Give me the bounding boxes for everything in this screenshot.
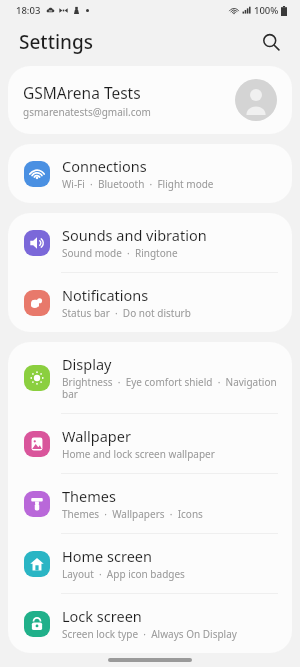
- staticText: Wallpaper: [62, 426, 131, 446]
- staticText: Home and lock screen wallpaper: [62, 447, 215, 461]
- staticText: Notifications: [62, 285, 149, 305]
- staticText: Status bar · Do not disturb: [62, 306, 191, 320]
- staticText: Brightness · Eye comfort shield · Naviga…: [62, 375, 278, 401]
- button[interactable]: Display: [8, 342, 292, 413]
- staticText: 100%: [254, 4, 279, 17]
- staticText: gsmarenatests@gmail.com: [23, 105, 151, 119]
- staticText: Wi-Fi · Bluetooth · Flight mode: [62, 177, 214, 191]
- staticText: 18:03: [16, 4, 41, 17]
- staticText: Layout · App icon badges: [62, 567, 185, 581]
- staticText: Sounds and vibration: [62, 225, 207, 245]
- staticText: Themes: [62, 486, 116, 506]
- staticText: Settings: [19, 29, 93, 55]
- button[interactable]: Notifications: [8, 273, 292, 332]
- button[interactable]: Sounds and vibration: [8, 213, 292, 272]
- staticText: Connections: [62, 156, 147, 176]
- staticText: Lock screen: [62, 606, 142, 626]
- staticText: Sound mode · Ringtone: [62, 246, 178, 260]
- button[interactable]: Themes: [8, 474, 292, 533]
- button[interactable]: Home screen: [8, 534, 292, 593]
- button[interactable]: Search: [254, 25, 288, 59]
- button[interactable]: GSMArena Tests: [8, 66, 292, 134]
- button[interactable]: Lock screen: [8, 594, 292, 653]
- staticText: GSMArena Tests: [23, 82, 141, 103]
- staticText: Home screen: [62, 546, 152, 566]
- staticText: Themes · Wallpapers · Icons: [62, 507, 203, 521]
- button[interactable]: Connections: [8, 144, 292, 203]
- staticText: Display: [62, 354, 112, 374]
- staticText: Screen lock type · Always On Display: [62, 627, 237, 641]
- button[interactable]: Wallpaper: [8, 414, 292, 473]
